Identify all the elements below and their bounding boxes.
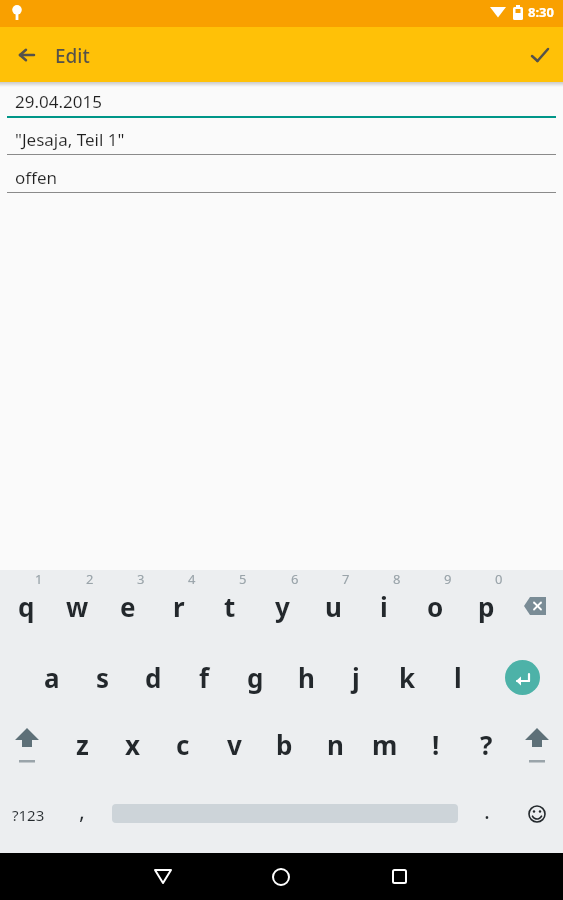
button[interactable] — [139, 853, 187, 900]
button[interactable]: g — [230, 646, 280, 708]
staticText: x — [125, 727, 141, 762]
staticText: ! — [432, 727, 440, 762]
button[interactable]: q — [1, 575, 51, 637]
staticText: h — [298, 660, 315, 695]
staticText: q — [18, 589, 35, 624]
staticText: 1 — [35, 570, 43, 588]
staticText: 0 — [495, 570, 503, 588]
staticText: 7 — [342, 570, 350, 588]
staticText: j — [352, 660, 360, 695]
staticText: s — [96, 660, 110, 695]
staticText: 3 — [137, 570, 145, 588]
button[interactable]: p — [461, 575, 511, 637]
button[interactable]: r — [154, 575, 204, 637]
staticText: 8:30 — [528, 3, 554, 21]
staticText: ? — [480, 727, 493, 762]
button[interactable]: c — [158, 713, 208, 775]
button[interactable] — [257, 853, 305, 900]
button[interactable]: e — [103, 575, 153, 637]
button[interactable]: 29.04.2015 — [0, 87, 563, 125]
staticText: "Jesaja, Teil 1" — [15, 128, 125, 151]
staticText: d — [145, 660, 162, 695]
staticText: f — [199, 660, 210, 695]
staticText: l — [454, 660, 462, 695]
staticText: g — [247, 660, 264, 695]
button[interactable]: f — [179, 646, 229, 708]
staticText: u — [325, 589, 342, 624]
button[interactable]: i — [359, 575, 409, 637]
button[interactable] — [8, 36, 46, 74]
button[interactable]: t — [205, 575, 255, 637]
button[interactable]: s — [78, 646, 128, 708]
button[interactable] — [2, 715, 52, 777]
staticText: p — [478, 589, 495, 624]
button[interactable]: ?123 — [3, 784, 53, 846]
button[interactable] — [501, 656, 543, 698]
staticText: w — [66, 589, 89, 624]
staticText: 29.04.2015 — [15, 90, 102, 113]
button[interactable] — [521, 36, 559, 74]
button[interactable]: , — [57, 779, 107, 841]
staticText: 5 — [239, 570, 247, 588]
staticText: c — [176, 727, 190, 762]
button[interactable] — [512, 783, 562, 845]
staticText: i — [380, 589, 388, 624]
button[interactable]: d — [128, 646, 178, 708]
button[interactable]: k — [382, 646, 432, 708]
button[interactable]: l — [433, 646, 483, 708]
staticText: y — [275, 589, 290, 624]
staticText: r — [173, 589, 185, 624]
staticText: b — [276, 727, 293, 762]
staticText: offen — [15, 166, 58, 189]
staticText: 2 — [86, 570, 94, 588]
button[interactable]: m — [360, 713, 410, 775]
button[interactable]: n — [310, 713, 360, 775]
staticText: v — [227, 727, 242, 762]
button[interactable] — [512, 715, 562, 777]
button[interactable]: v — [209, 713, 259, 775]
button[interactable]: offen — [0, 163, 563, 201]
staticText: ?123 — [12, 805, 45, 825]
staticText: a — [44, 660, 60, 695]
staticText: . — [484, 795, 490, 825]
button[interactable] — [375, 853, 423, 900]
button[interactable]: h — [281, 646, 331, 708]
button[interactable]: "Jesaja, Teil 1" — [0, 125, 563, 163]
button[interactable]: . — [462, 779, 512, 841]
staticText: n — [327, 727, 344, 762]
button[interactable]: j — [331, 646, 381, 708]
button[interactable]: ! — [411, 713, 461, 775]
staticText: m — [372, 727, 398, 762]
staticText: 8 — [393, 570, 401, 588]
button[interactable]: b — [259, 713, 309, 775]
button[interactable]: a — [27, 646, 77, 708]
staticText: k — [399, 660, 416, 695]
staticText: z — [76, 727, 89, 762]
staticText: e — [120, 589, 136, 624]
button[interactable]: z — [57, 713, 107, 775]
button[interactable] — [510, 575, 560, 637]
button[interactable]: x — [108, 713, 158, 775]
button[interactable]: o — [410, 575, 460, 637]
staticText: t — [224, 589, 236, 624]
button[interactable]: u — [308, 575, 358, 637]
staticText: , — [79, 795, 85, 825]
button[interactable]: w — [52, 575, 102, 637]
staticText: Edit — [55, 43, 90, 69]
button[interactable]: y — [257, 575, 307, 637]
staticText: 4 — [188, 570, 196, 588]
staticText: 9 — [444, 570, 452, 588]
staticText: o — [427, 589, 444, 624]
staticText: 6 — [291, 570, 299, 588]
button[interactable]: ? — [461, 713, 511, 775]
